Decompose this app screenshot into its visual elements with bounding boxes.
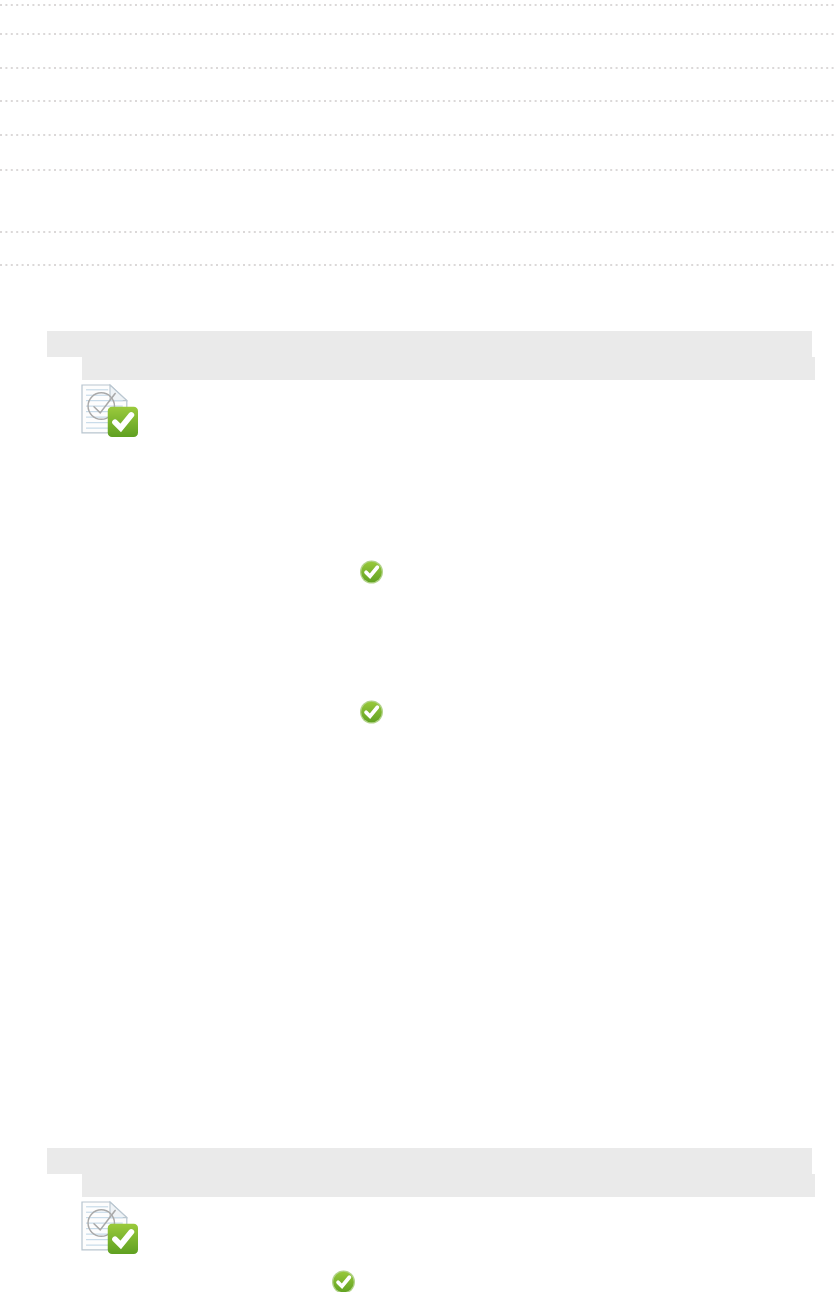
button[interactable]: Verified bbox=[332, 1271, 355, 1292]
button[interactable]: Completed document bbox=[82, 385, 138, 437]
button[interactable]: Completed document bbox=[82, 1202, 138, 1254]
button[interactable]: Verified bbox=[360, 701, 383, 724]
button[interactable]: Verified bbox=[360, 561, 383, 584]
